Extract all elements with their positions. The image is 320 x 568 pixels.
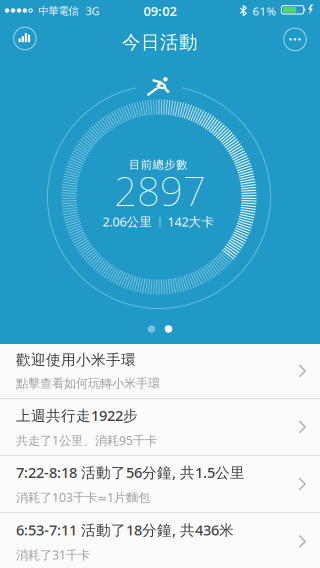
staticText: 2897: [114, 164, 206, 217]
staticText: 7:22-8:18 活動了56分鐘, 共1.5公里: [16, 463, 245, 482]
staticText: 61%: [252, 3, 276, 19]
staticText: 3G: [85, 4, 99, 18]
staticText: 今日活動: [122, 31, 198, 54]
staticText: 消耗了31千卡: [16, 547, 90, 563]
button[interactable]: 上週共行走1922步: [0, 399, 320, 455]
button[interactable]: 7:22-8:18 活動了56分鐘, 共1.5公里: [0, 456, 320, 512]
staticText: 6:53-7:11 活動了18分鐘, 共436米: [16, 520, 234, 540]
staticText: 歡迎使用小米手環: [16, 351, 136, 369]
staticText: 09:02: [144, 2, 176, 20]
staticText: 中華電信: [38, 5, 78, 17]
staticText: 142大卡: [167, 213, 214, 230]
button[interactable]: More: [278, 22, 312, 56]
button[interactable]: Statistics: [8, 21, 42, 55]
button[interactable]: 6:53-7:11 活動了18分鐘, 共436米: [0, 513, 320, 568]
staticText: 2.06公里: [102, 213, 152, 230]
staticText: 共走了1公里、消耗95千卡: [16, 432, 157, 448]
staticText: 上週共行走1922步: [16, 406, 138, 425]
staticText: 點擊查看如何玩轉小米手環: [16, 376, 160, 391]
staticText: 消耗了103千卡≈1片麵包: [16, 489, 150, 505]
staticText: 目前總步數: [129, 158, 187, 172]
button[interactable]: 歡迎使用小米手環: [0, 344, 320, 398]
